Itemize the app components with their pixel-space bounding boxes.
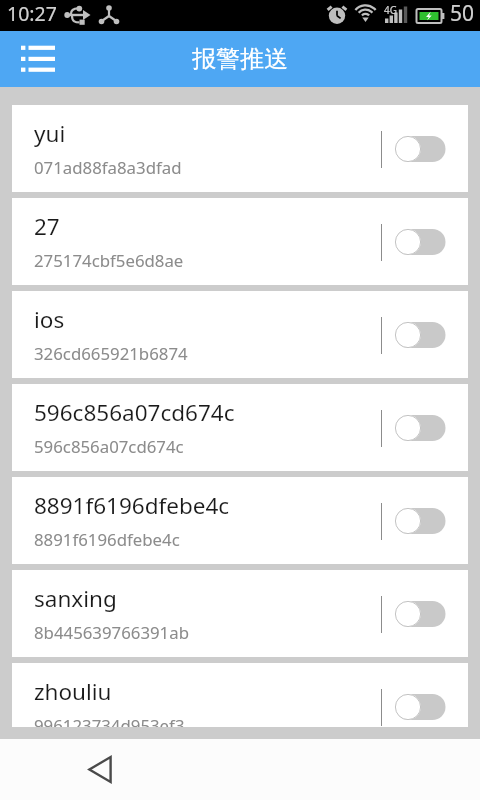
staticText: 8b445639766391ab [34, 621, 189, 644]
button[interactable]: Toggle alarm push [394, 600, 446, 628]
staticText: zhouliu [34, 676, 112, 707]
staticText: 10:27 [7, 0, 57, 27]
staticText: 326cd665921b6874 [34, 342, 188, 365]
staticText: 8891f6196dfebe4c [34, 490, 230, 521]
staticText: 8891f6196dfebe4c [34, 528, 180, 551]
button[interactable]: 8891f6196dfebe4c [12, 477, 468, 564]
staticText: 071ad88fa8a3dfad [34, 156, 182, 179]
button[interactable]: 27 [12, 198, 468, 285]
staticText: 4G [384, 3, 397, 17]
button[interactable]: Toggle alarm push [394, 414, 446, 442]
staticText: yui [34, 118, 66, 149]
button[interactable]: Back [76, 745, 124, 793]
staticText: 996123734d953ef3 [34, 714, 185, 727]
staticText: 50 [450, 0, 475, 28]
staticText: 596c856a07cd674c [34, 435, 184, 458]
staticText: 275174cbf5e6d8ae [34, 249, 184, 272]
button[interactable]: 596c856a07cd674c [12, 384, 468, 471]
staticText: 596c856a07cd674c [34, 397, 235, 428]
button[interactable]: Toggle alarm push [394, 135, 446, 163]
button[interactable]: zhouliu [12, 663, 468, 727]
button[interactable]: Toggle alarm push [394, 693, 446, 721]
staticText: 27 [34, 211, 60, 242]
staticText: sanxing [34, 583, 117, 614]
button[interactable]: Toggle alarm push [394, 228, 446, 256]
staticText: 报警推送 [192, 44, 288, 74]
button[interactable]: Toggle alarm push [394, 507, 446, 535]
staticText: ios [34, 304, 65, 335]
button[interactable]: yui [12, 105, 468, 192]
button[interactable]: ios [12, 291, 468, 378]
button[interactable]: sanxing [12, 570, 468, 657]
button[interactable]: Open navigation menu [6, 33, 58, 85]
button[interactable]: Toggle alarm push [394, 321, 446, 349]
